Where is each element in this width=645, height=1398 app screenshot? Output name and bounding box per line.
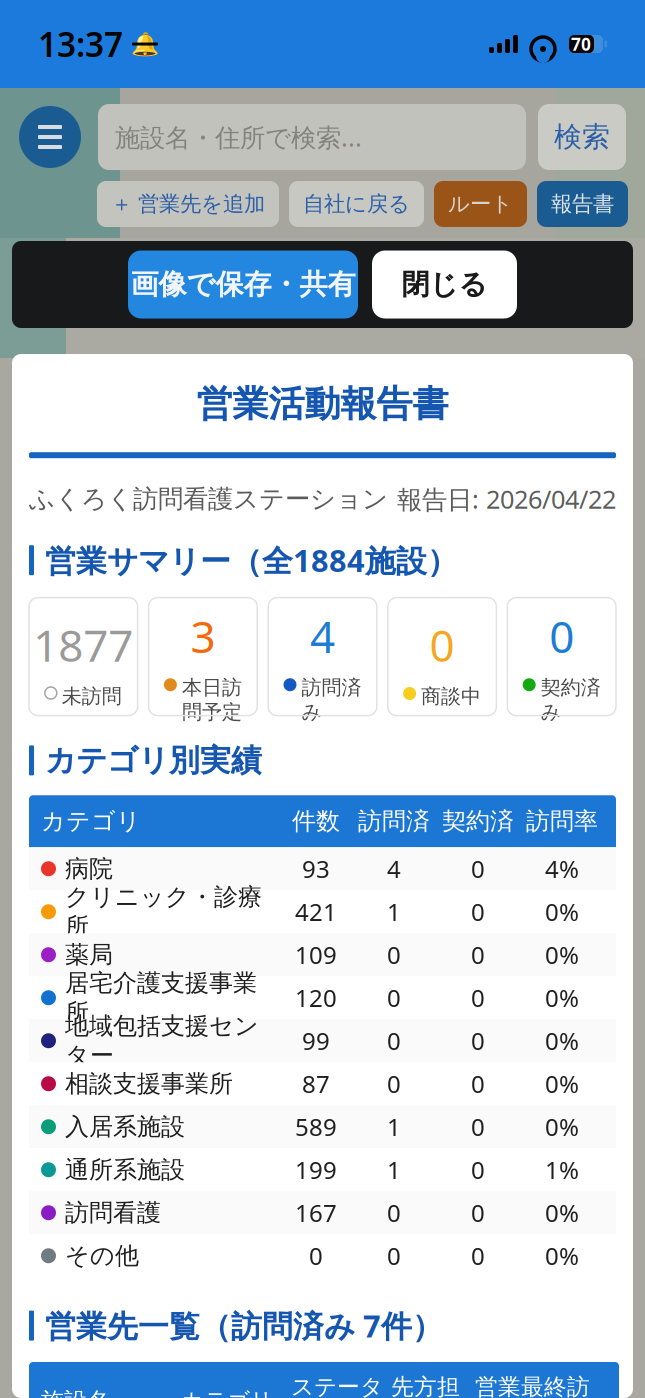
staticText: 0 <box>471 982 485 1014</box>
staticText: 0% <box>545 896 579 928</box>
button[interactable]: 画像で保存・共有 <box>128 250 358 318</box>
staticText: 訪問率 <box>526 806 598 836</box>
staticText: 0 <box>471 896 485 928</box>
staticText: 0% <box>545 982 579 1014</box>
staticText: 0% <box>545 1197 579 1229</box>
staticText: クリニック・診療所 <box>65 882 262 941</box>
staticText: 0 <box>430 616 455 674</box>
staticText: 施設名・住所で検索... <box>115 120 362 154</box>
button[interactable]: 報告書 <box>537 181 628 227</box>
staticText: 1 <box>387 896 401 928</box>
staticText: 589 <box>295 1111 337 1143</box>
staticText: 相談支援事業所 <box>65 1069 233 1098</box>
button[interactable]: ルート <box>434 181 527 227</box>
staticText: 🔔 <box>131 31 159 57</box>
staticText: 4% <box>545 853 579 885</box>
staticText: 0 <box>387 939 401 971</box>
staticText: 0 <box>471 1154 485 1186</box>
staticText: 病院 <box>65 854 113 883</box>
staticText: 167 <box>295 1197 337 1229</box>
button[interactable]: 検索 <box>538 104 626 170</box>
staticText: 訪問看護 <box>65 1198 161 1227</box>
staticText: その他 <box>65 1241 139 1270</box>
button[interactable]: 自社に戻る <box>289 181 424 227</box>
staticText: 訪問済み <box>301 675 361 724</box>
staticText: 1% <box>545 1154 579 1186</box>
staticText: 先方担当 <box>391 1373 460 1398</box>
staticText: 0 <box>471 939 485 971</box>
button[interactable]: ＋ 営業先を追加 <box>97 181 279 227</box>
staticText: 4 <box>387 853 401 885</box>
staticText: 0 <box>549 607 574 665</box>
staticText: ＋ 営業先を追加 <box>111 191 265 217</box>
staticText: 199 <box>295 1154 337 1186</box>
staticText: 1877 <box>33 616 133 674</box>
staticText: 0 <box>471 1197 485 1229</box>
staticText: 0% <box>545 1240 579 1272</box>
staticText: 商談中 <box>421 684 481 709</box>
button[interactable]: 施設名・住所で検索... <box>98 104 526 170</box>
staticText: ステータス <box>291 1373 383 1398</box>
staticText: 営業 担当 <box>475 1373 521 1398</box>
staticText: 閉じる <box>401 267 487 302</box>
staticText: 地域包括支援センター <box>65 1011 259 1070</box>
staticText: カテゴリ <box>41 806 141 836</box>
staticText: 3 <box>190 607 215 665</box>
staticText: 109 <box>295 939 337 971</box>
staticText: 薬局 <box>65 940 113 969</box>
staticText: 93 <box>302 853 330 885</box>
staticText: 営業活動報告書 <box>196 382 448 426</box>
staticText: 営業先一覧（訪問済み 7件） <box>45 1305 443 1346</box>
staticText: 0% <box>545 939 579 971</box>
staticText: 99 <box>302 1025 330 1057</box>
staticText: 契約済 <box>442 806 514 836</box>
staticText: 0 <box>471 1068 485 1100</box>
staticText: 0 <box>471 853 485 885</box>
staticText: カテゴリ別実績 <box>45 742 262 779</box>
staticText: 訪問済 <box>358 806 430 836</box>
button[interactable]: メニュー <box>19 106 81 168</box>
staticText: 1 <box>387 1154 401 1186</box>
staticText: 件数 <box>292 806 340 836</box>
staticText: 画像で保存・共有 <box>130 267 355 302</box>
staticText: 421 <box>295 896 337 928</box>
staticText: 0 <box>471 1111 485 1143</box>
staticText: 0% <box>545 1025 579 1057</box>
staticText: 本日訪問予定 <box>182 675 242 724</box>
staticText: ふくろく訪問看護ステーション <box>29 483 388 515</box>
staticText: 87 <box>302 1068 330 1100</box>
staticText: 施設名 <box>41 1387 110 1398</box>
staticText: 1 <box>387 1111 401 1143</box>
staticText: 未訪問 <box>62 684 122 709</box>
staticText: 13:37 <box>38 22 123 66</box>
staticText: 0 <box>309 1240 323 1272</box>
staticText: 居宅介護支援事業所 <box>65 968 257 1027</box>
staticText: 自社に戻る <box>303 191 410 217</box>
staticText: ルート <box>448 191 513 217</box>
staticText: 0 <box>387 982 401 1014</box>
staticText: 最終訪問 <box>521 1373 590 1398</box>
staticText: 0% <box>545 1111 579 1143</box>
staticText: 営業サマリー（全1884施設） <box>45 540 458 581</box>
staticText: 0 <box>387 1240 401 1272</box>
staticText: 120 <box>295 982 337 1014</box>
staticText: 0 <box>387 1197 401 1229</box>
staticText: 検索 <box>554 120 610 154</box>
staticText: 0 <box>387 1025 401 1057</box>
button[interactable]: 閉じる <box>372 250 517 318</box>
staticText: 0 <box>471 1025 485 1057</box>
staticText: 報告書 <box>551 191 614 217</box>
staticText: 入居系施設 <box>65 1112 185 1141</box>
staticText: 70 <box>571 32 591 55</box>
staticText: 4 <box>310 607 335 665</box>
staticText: 報告日: 2026/04/22 <box>397 482 616 516</box>
staticText: 0 <box>471 1240 485 1272</box>
staticText: 契約済み <box>541 675 601 724</box>
staticText: カテゴリ <box>181 1387 273 1398</box>
staticText: 0% <box>545 1068 579 1100</box>
staticText: 0 <box>387 1068 401 1100</box>
staticText: 通所系施設 <box>65 1155 185 1184</box>
